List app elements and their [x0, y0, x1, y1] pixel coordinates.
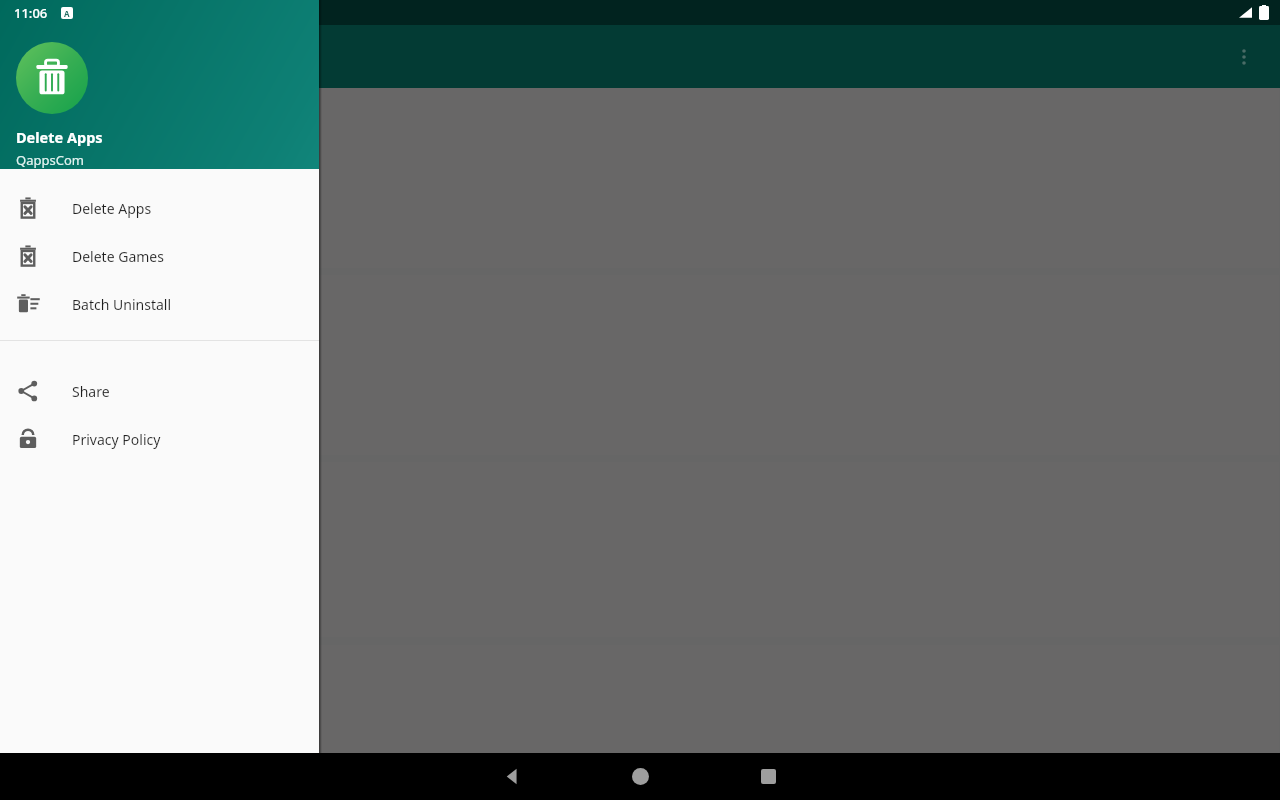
staticText: Privacy Policy	[72, 430, 161, 449]
button[interactable]: Home	[576, 753, 704, 800]
button[interactable]: More options	[1220, 33, 1268, 81]
button[interactable]: Delete Apps	[0, 184, 319, 232]
staticText: Batch Uninstall	[72, 295, 172, 314]
button[interactable]: Selection	[1, 462, 1279, 637]
button[interactable]: Delete	[1, 88, 1279, 268]
staticText: Share	[72, 382, 110, 401]
staticText: A	[64, 8, 70, 19]
button[interactable]	[1, 645, 1279, 753]
button[interactable]: Batch Uninstall	[0, 280, 319, 328]
staticText: Delete Apps	[16, 127, 103, 147]
staticText: Delete Games	[72, 247, 164, 266]
staticText: 11:06	[14, 4, 48, 22]
button[interactable]: Share	[0, 367, 319, 415]
button[interactable]	[1, 275, 1279, 455]
button[interactable]: Delete Games	[0, 232, 319, 280]
staticText: Delete Apps	[72, 199, 152, 218]
button[interactable]: Privacy Policy	[0, 415, 319, 463]
button[interactable]: Recent apps	[704, 753, 832, 800]
button[interactable]: Back	[448, 753, 576, 800]
staticText: QappsCom	[16, 151, 84, 169]
